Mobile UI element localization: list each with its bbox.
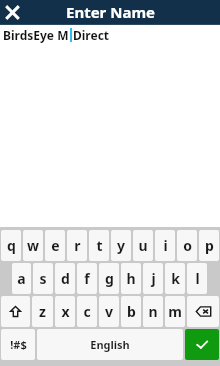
button[interactable]: k bbox=[165, 263, 185, 294]
button[interactable]: l bbox=[187, 263, 207, 294]
button[interactable]: r bbox=[67, 230, 87, 261]
button[interactable]: p bbox=[199, 230, 219, 261]
button[interactable]: s bbox=[33, 263, 53, 294]
button[interactable]: v bbox=[99, 296, 119, 327]
button[interactable]: y bbox=[111, 230, 131, 261]
staticText: o bbox=[183, 236, 192, 255]
button[interactable]: !#$ bbox=[1, 329, 35, 360]
button[interactable]: q bbox=[1, 230, 21, 261]
staticText: h bbox=[126, 269, 136, 288]
staticText: m bbox=[168, 302, 182, 321]
staticText: n bbox=[148, 302, 158, 321]
staticText: u bbox=[138, 236, 148, 255]
staticText: Enter Name bbox=[66, 2, 155, 22]
staticText: s bbox=[39, 269, 47, 288]
button[interactable]: m bbox=[165, 296, 185, 327]
button[interactable]: Shift bbox=[1, 296, 30, 327]
button[interactable]: j bbox=[143, 263, 163, 294]
staticText: y bbox=[117, 236, 125, 255]
button[interactable]: z bbox=[32, 296, 53, 327]
button[interactable]: t bbox=[89, 230, 109, 261]
button[interactable]: Backspace bbox=[187, 296, 219, 327]
staticText: English bbox=[90, 337, 130, 352]
button[interactable]: a bbox=[12, 263, 31, 294]
button[interactable]: English bbox=[37, 329, 183, 360]
staticText: p bbox=[205, 236, 214, 255]
button[interactable]: x bbox=[55, 296, 75, 327]
button[interactable]: i bbox=[155, 230, 175, 261]
staticText: e bbox=[51, 236, 60, 255]
staticText: w bbox=[27, 236, 39, 255]
staticText: c bbox=[83, 302, 91, 321]
staticText: b bbox=[127, 302, 136, 321]
button[interactable]: g bbox=[99, 263, 119, 294]
button[interactable]: u bbox=[133, 230, 153, 261]
button[interactable]: e bbox=[45, 230, 65, 261]
staticText: d bbox=[61, 269, 70, 288]
button[interactable]: c bbox=[77, 296, 97, 327]
staticText: q bbox=[7, 236, 16, 255]
button[interactable]: h bbox=[121, 263, 141, 294]
staticText: !#$ bbox=[10, 337, 27, 352]
button[interactable]: Close bbox=[0, 0, 24, 24]
staticText: x bbox=[61, 302, 70, 321]
staticText: r bbox=[74, 236, 81, 255]
staticText: f bbox=[84, 269, 90, 288]
staticText: k bbox=[171, 269, 180, 288]
staticText: v bbox=[105, 302, 113, 321]
button[interactable]: f bbox=[77, 263, 97, 294]
button[interactable]: d bbox=[55, 263, 75, 294]
staticText: t bbox=[96, 236, 103, 255]
staticText: i bbox=[163, 236, 168, 255]
staticText: j bbox=[151, 269, 156, 288]
button[interactable]: w bbox=[23, 230, 43, 261]
staticText: g bbox=[105, 269, 114, 288]
staticText: l bbox=[195, 269, 200, 288]
button[interactable]: b bbox=[121, 296, 141, 327]
button[interactable]: Enter bbox=[185, 329, 219, 360]
staticText: z bbox=[39, 302, 46, 321]
staticText: Direct bbox=[73, 27, 110, 43]
staticText: BirdsEye M bbox=[3, 27, 69, 43]
staticText: a bbox=[17, 269, 26, 288]
button[interactable]: n bbox=[143, 296, 163, 327]
button[interactable]: o bbox=[177, 230, 197, 261]
